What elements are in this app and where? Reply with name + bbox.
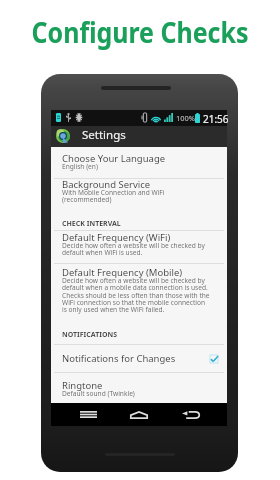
staticText: Configure Checks [31,13,248,52]
button[interactable]: Settings [51,126,227,147]
button[interactable]: Recent apps [73,403,103,426]
button[interactable]: Ringtone [51,380,227,398]
staticText: Decide how often a website will be check… [62,276,205,285]
button[interactable]: Background Service [51,179,227,204]
button[interactable]: Default Frequency (WiFi) [51,232,227,257]
button[interactable]: Choose Your Language [51,153,227,171]
staticText: 100% [176,113,196,123]
staticText: Ringtone [62,379,103,392]
staticText: English (en) [62,162,98,171]
staticText: Background Service [62,178,151,191]
button[interactable]: Home [124,403,154,426]
button[interactable]: Back [176,403,206,426]
button[interactable]: Default Frequency (Mobile) [51,267,227,314]
staticText: WiFi connection so that the mobile conne… [62,298,206,307]
staticText: With Mobile Connection and WiFi [62,188,165,197]
staticText: default when WiFi is used. [62,248,143,257]
staticText: CHECK INTERVAL [62,219,121,229]
staticText: is only used when the WiFi failed. [62,305,165,314]
staticText: Choose Your Language [62,152,166,165]
staticText: Decide how often a website will be check… [62,241,205,250]
staticText: Default sound (Twinkle) [62,389,135,398]
staticText: default when a mobile data connection is… [62,283,208,292]
staticText: Default Frequency (Mobile) [62,266,183,279]
staticText: (recommended) [62,195,112,204]
staticText: NOTIFICATIONS [62,330,118,340]
staticText: Checks should be less often than those w… [62,291,210,300]
button[interactable]: Notifications for Changes [51,352,227,365]
staticText: Default Frequency (WiFi) [62,231,171,244]
staticText: 21:56 [203,112,229,126]
staticText: Notifications for Changes [62,352,176,365]
staticText: Settings [82,127,126,143]
